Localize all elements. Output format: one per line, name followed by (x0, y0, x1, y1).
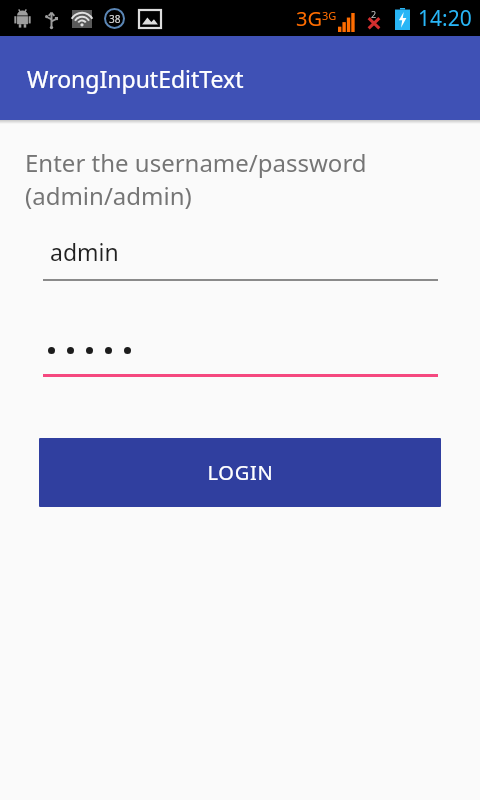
staticText: 14:20 (418, 4, 472, 33)
button[interactable]: LOGIN (39, 438, 441, 507)
staticText: 3G (322, 8, 337, 23)
button[interactable] (43, 337, 438, 377)
staticText: Enter the username/password (admin/admin… (25, 146, 367, 212)
staticText: LOGIN (207, 459, 274, 486)
button[interactable]: admin (43, 236, 438, 281)
staticText: WrongInputEditText (27, 63, 244, 94)
staticText: 2 (371, 8, 377, 20)
staticText: admin (50, 236, 119, 267)
staticText: 38 (109, 12, 121, 26)
staticText: 3G (296, 5, 322, 32)
